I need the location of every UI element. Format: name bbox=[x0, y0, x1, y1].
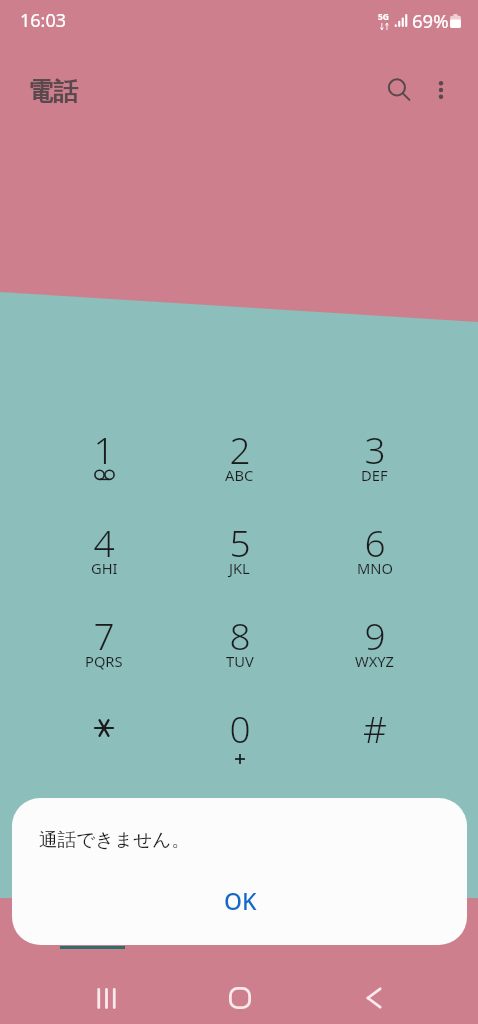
staticText: 2 bbox=[229, 424, 251, 474]
staticText: GHI bbox=[91, 558, 118, 578]
staticText: 6 bbox=[364, 517, 386, 567]
button[interactable]: 8 bbox=[172, 610, 307, 703]
staticText: 1 bbox=[93, 424, 115, 474]
button[interactable]: 2 bbox=[172, 424, 307, 517]
button[interactable] bbox=[36, 703, 172, 796]
staticText: 0 bbox=[229, 703, 251, 753]
staticText: 7 bbox=[93, 610, 115, 660]
staticText: OK bbox=[224, 885, 257, 916]
staticText: 5 bbox=[229, 517, 251, 567]
staticText: JKL bbox=[229, 558, 250, 578]
staticText: 3 bbox=[364, 424, 386, 474]
button[interactable]: 7 bbox=[36, 610, 172, 703]
button[interactable]: 1 bbox=[36, 424, 172, 517]
button[interactable]: 5 bbox=[172, 517, 307, 610]
staticText: DEF bbox=[361, 465, 388, 485]
staticText: MNO bbox=[357, 558, 393, 578]
staticText: 電話 bbox=[28, 76, 78, 107]
staticText: 8 bbox=[229, 610, 251, 660]
button[interactable]: Back bbox=[346, 970, 402, 1024]
staticText: 69% bbox=[412, 8, 449, 33]
staticText: 4 bbox=[93, 517, 115, 567]
staticText: 9 bbox=[364, 610, 386, 660]
staticText: ABC bbox=[225, 465, 254, 485]
button[interactable]: # bbox=[307, 703, 442, 796]
staticText: 16:03 bbox=[20, 8, 67, 33]
staticText: 5G bbox=[378, 11, 390, 23]
staticText: # bbox=[363, 703, 387, 753]
button[interactable]: 9 bbox=[307, 610, 442, 703]
staticText: 通話できません。 bbox=[39, 828, 190, 851]
button[interactable]: Search bbox=[375, 66, 423, 114]
button[interactable]: Home bbox=[212, 970, 268, 1024]
button[interactable]: 4 bbox=[36, 517, 172, 610]
staticText: PQRS bbox=[85, 651, 123, 671]
staticText: WXYZ bbox=[355, 651, 394, 671]
button[interactable]: Recents bbox=[78, 970, 134, 1024]
staticText: TUV bbox=[226, 651, 254, 671]
button[interactable]: 3 bbox=[307, 424, 442, 517]
button[interactable]: 0 bbox=[172, 703, 307, 796]
button[interactable]: More options bbox=[417, 66, 465, 114]
button[interactable]: 6 bbox=[307, 517, 442, 610]
button[interactable]: OK bbox=[200, 878, 280, 922]
